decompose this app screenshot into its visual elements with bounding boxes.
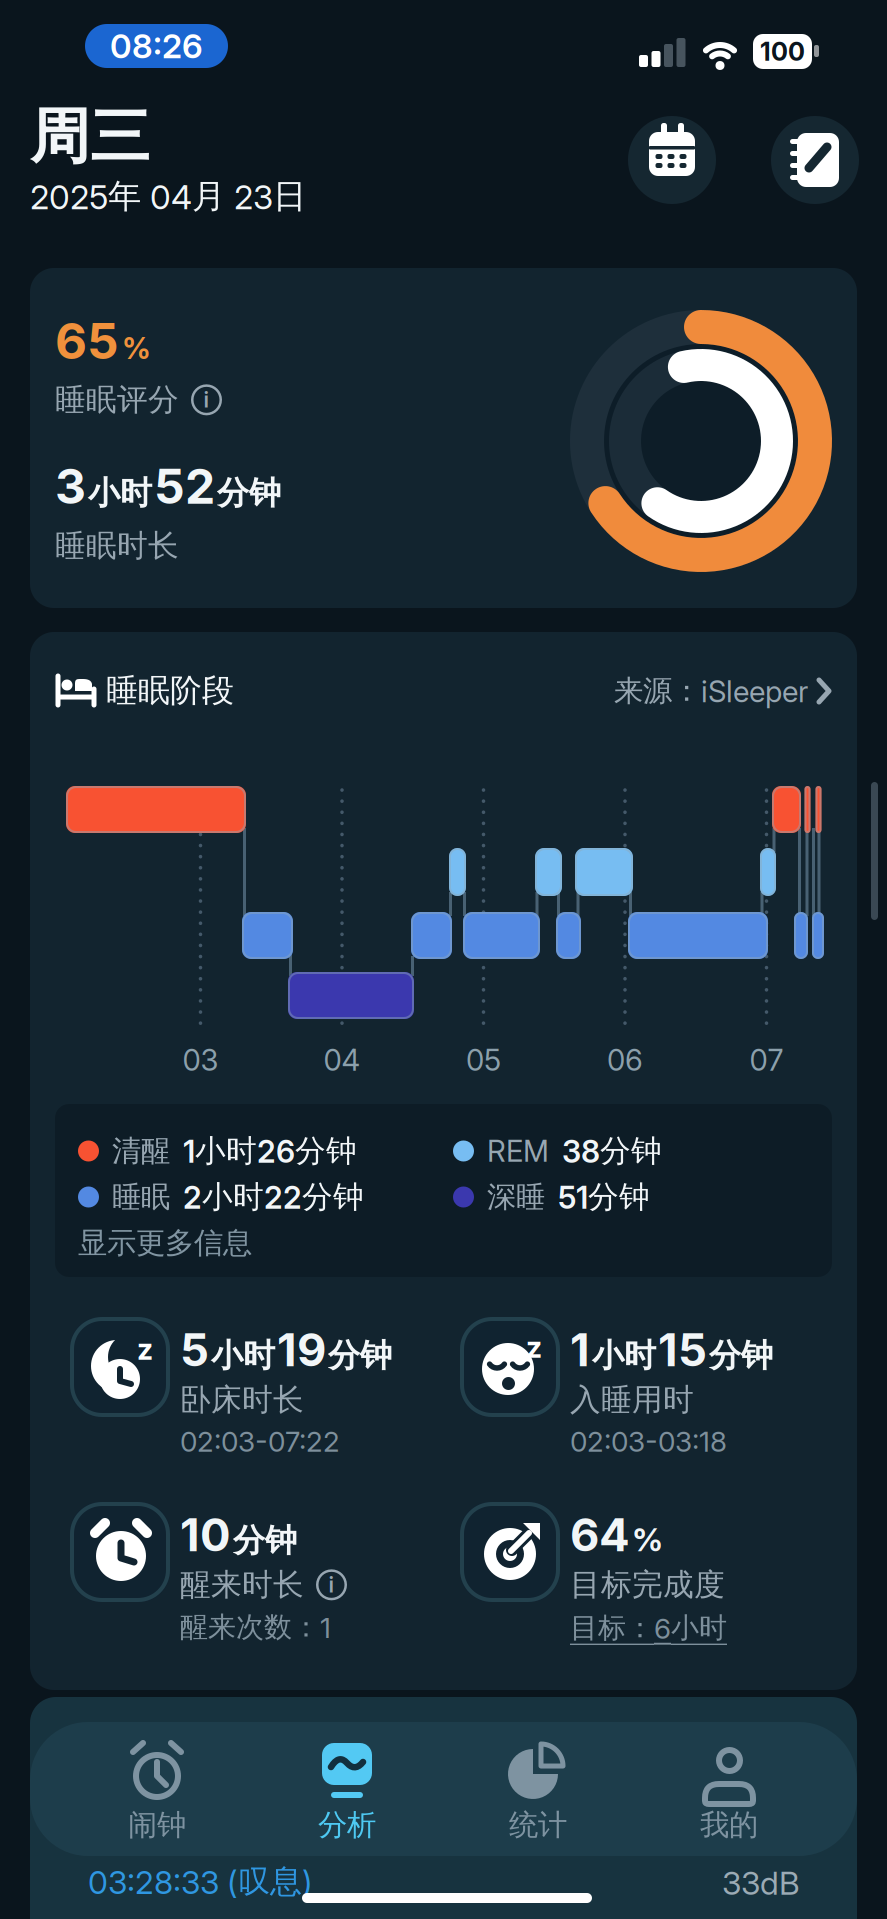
staticText: 睡眠时长 <box>55 527 179 565</box>
staticText: 统计 <box>509 1807 567 1843</box>
staticText: 目标：6小时 <box>570 1611 727 1645</box>
button[interactable]: 睡眠评分说明 <box>191 384 222 415</box>
staticText: 我的 <box>700 1807 758 1843</box>
staticText: 08:26 <box>110 26 203 66</box>
staticText: 分析 <box>318 1807 376 1843</box>
staticText: 03:28:33 (叹息) <box>88 1862 313 1901</box>
staticText: 2小时22分钟 <box>183 1178 364 1216</box>
staticText: 33dB <box>722 1864 800 1902</box>
staticText: i <box>203 387 209 412</box>
staticText: 醒来时长 <box>180 1566 304 1604</box>
button[interactable]: 显示更多信息 <box>78 1223 378 1263</box>
staticText: 02:03-03:18 <box>570 1425 727 1458</box>
button[interactable]: 统计 <box>458 1729 618 1849</box>
staticText: 深睡 <box>487 1179 545 1215</box>
staticText: 分钟 <box>233 1521 297 1560</box>
staticText: REM <box>487 1134 549 1168</box>
staticText: 分钟 <box>709 1336 773 1375</box>
staticText: 1小时26分钟 <box>183 1132 357 1170</box>
staticText: 03 <box>182 1043 218 1077</box>
staticText: 19 <box>277 1323 326 1376</box>
staticText: 64 <box>570 1508 630 1561</box>
staticText: 分钟 <box>328 1336 392 1375</box>
button[interactable]: 睡眠笔记 <box>771 116 859 204</box>
button[interactable]: 我的 <box>649 1729 809 1849</box>
staticText: 小时 <box>211 1336 275 1375</box>
staticText: 周三 <box>30 100 150 174</box>
button[interactable]: 闹钟 <box>77 1729 237 1849</box>
staticText: 醒来次数：1 <box>180 1610 331 1644</box>
button[interactable]: 目标：6小时 <box>570 1610 850 1646</box>
staticText: 来源：iSleeper <box>614 673 808 709</box>
staticText: 3 <box>55 458 86 515</box>
button[interactable]: 醒来时长说明 <box>316 1569 347 1600</box>
staticText: 分钟 <box>217 473 281 513</box>
staticText: 睡眠评分 <box>55 381 179 419</box>
staticText: 38分钟 <box>562 1132 662 1170</box>
staticText: i <box>328 1572 334 1597</box>
staticText: 07 <box>749 1043 783 1077</box>
staticText: % <box>632 1521 663 1558</box>
staticText: 清醒 <box>112 1133 170 1169</box>
staticText: z <box>137 1332 153 1366</box>
staticText: 睡眠 <box>112 1179 170 1215</box>
staticText: 2025年 04月 23日 <box>30 176 306 217</box>
staticText: 52 <box>154 458 215 515</box>
staticText: 小时 <box>592 1336 656 1375</box>
staticText: z <box>526 1330 542 1364</box>
button[interactable]: 分析 <box>267 1729 427 1849</box>
staticText: 05 <box>466 1043 501 1077</box>
staticText: 目标完成度 <box>570 1566 725 1604</box>
staticText: 51分钟 <box>558 1178 650 1216</box>
staticText: 睡眠阶段 <box>106 671 234 710</box>
staticText: 小时 <box>88 473 152 513</box>
staticText: 1 <box>570 1323 590 1376</box>
staticText: 闹钟 <box>128 1807 186 1843</box>
button[interactable]: 来源：iSleeper <box>514 669 834 713</box>
staticText: 显示更多信息 <box>78 1225 252 1261</box>
staticText: 04 <box>323 1043 360 1077</box>
staticText: 02:03-07:22 <box>180 1425 340 1458</box>
staticText: 65 <box>55 312 119 370</box>
staticText: 入睡用时 <box>570 1381 694 1419</box>
staticText: 15 <box>658 1323 707 1376</box>
button[interactable]: 日历 <box>628 116 716 204</box>
staticText: 06 <box>607 1043 643 1077</box>
staticText: 卧床时长 <box>180 1381 304 1419</box>
staticText: 10 <box>180 1508 231 1561</box>
staticText: 5 <box>180 1323 209 1376</box>
button[interactable]: 03:28:33 (叹息) <box>88 1860 800 1910</box>
staticText: 100 <box>760 37 805 66</box>
staticText: % <box>122 331 151 366</box>
